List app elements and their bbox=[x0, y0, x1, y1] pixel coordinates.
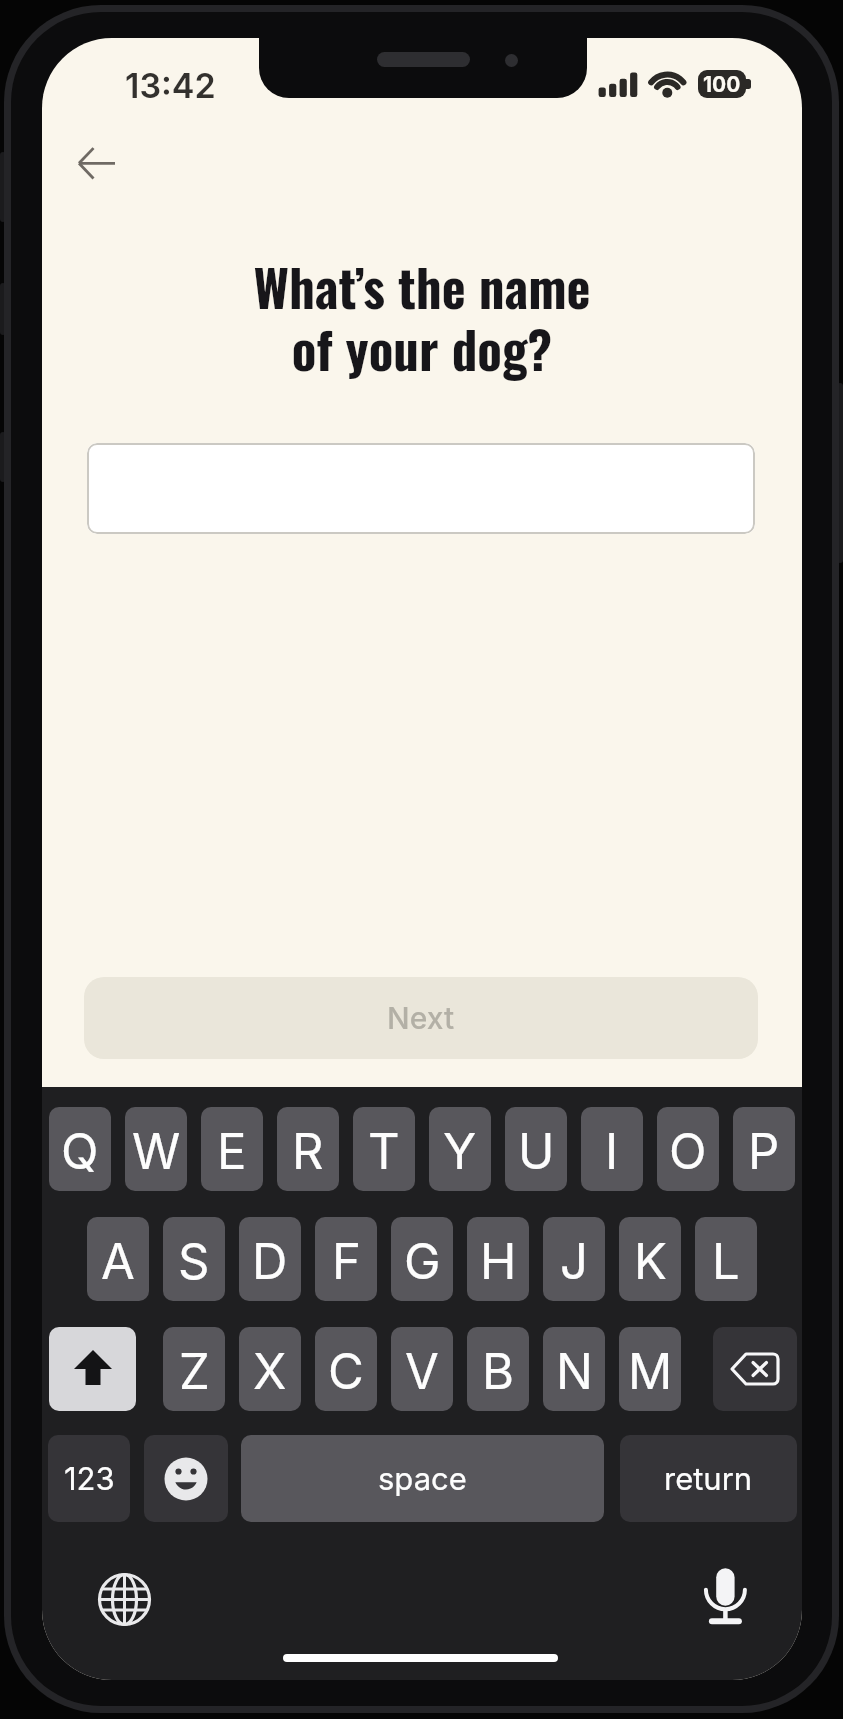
button[interactable] bbox=[713, 1327, 797, 1411]
staticText: F bbox=[332, 1232, 361, 1291]
staticText: E bbox=[217, 1122, 247, 1181]
button[interactable]: H bbox=[467, 1217, 529, 1301]
button[interactable]: return bbox=[620, 1435, 797, 1522]
button[interactable]: O bbox=[657, 1107, 719, 1191]
button[interactable]: V bbox=[391, 1327, 453, 1411]
button[interactable]: space bbox=[241, 1435, 604, 1522]
button[interactable]: B bbox=[467, 1327, 529, 1411]
staticText: D bbox=[252, 1232, 288, 1291]
staticText: W bbox=[132, 1122, 181, 1181]
button[interactable]: L bbox=[695, 1217, 757, 1301]
button[interactable]: U bbox=[505, 1107, 567, 1191]
button[interactable] bbox=[94, 1569, 155, 1630]
staticText: J bbox=[560, 1232, 588, 1291]
staticText: space bbox=[378, 1460, 467, 1498]
staticText: V bbox=[405, 1342, 439, 1401]
staticText: Y bbox=[443, 1122, 477, 1181]
staticText: H bbox=[480, 1232, 517, 1291]
button[interactable] bbox=[87, 443, 755, 534]
button[interactable]: A bbox=[87, 1217, 149, 1301]
staticText: What’s the name bbox=[42, 248, 802, 324]
button[interactable]: Z bbox=[163, 1327, 225, 1411]
staticText: N bbox=[556, 1342, 593, 1401]
button[interactable] bbox=[144, 1435, 228, 1522]
staticText: S bbox=[178, 1232, 210, 1291]
staticText: Z bbox=[179, 1342, 210, 1401]
button[interactable] bbox=[49, 1327, 136, 1411]
staticText: return bbox=[664, 1460, 753, 1498]
staticText: I bbox=[605, 1122, 619, 1181]
staticText: B bbox=[482, 1342, 515, 1401]
button[interactable]: C bbox=[315, 1327, 377, 1411]
staticText: U bbox=[518, 1122, 555, 1181]
button[interactable]: S bbox=[163, 1217, 225, 1301]
button[interactable]: Y bbox=[429, 1107, 491, 1191]
staticText: O bbox=[669, 1122, 707, 1181]
button[interactable]: E bbox=[201, 1107, 263, 1191]
staticText: 100 bbox=[703, 72, 741, 97]
staticText: of your dog? bbox=[42, 310, 802, 386]
button[interactable]: N bbox=[543, 1327, 605, 1411]
button[interactable]: F bbox=[315, 1217, 377, 1301]
staticText: K bbox=[634, 1232, 667, 1291]
staticText: X bbox=[253, 1342, 287, 1401]
button[interactable]: J bbox=[543, 1217, 605, 1301]
staticText: P bbox=[748, 1122, 780, 1181]
button[interactable]: W bbox=[125, 1107, 187, 1191]
button[interactable]: P bbox=[733, 1107, 795, 1191]
button[interactable] bbox=[696, 1565, 756, 1627]
staticText: M bbox=[628, 1342, 673, 1401]
button[interactable]: R bbox=[277, 1107, 339, 1191]
button[interactable]: K bbox=[619, 1217, 681, 1301]
staticText: 123 bbox=[64, 1460, 115, 1498]
button[interactable] bbox=[64, 133, 124, 193]
staticText: Next bbox=[387, 1000, 455, 1036]
button[interactable]: M bbox=[619, 1327, 681, 1411]
button[interactable]: 123 bbox=[48, 1435, 130, 1522]
staticText: 13:42 bbox=[125, 65, 216, 106]
button[interactable]: I bbox=[581, 1107, 643, 1191]
staticText: A bbox=[101, 1232, 135, 1291]
staticText: G bbox=[404, 1232, 441, 1291]
button[interactable]: T bbox=[353, 1107, 415, 1191]
button[interactable]: G bbox=[391, 1217, 453, 1301]
button[interactable]: Next bbox=[84, 977, 758, 1059]
staticText: T bbox=[368, 1122, 400, 1181]
button[interactable]: X bbox=[239, 1327, 301, 1411]
button[interactable]: D bbox=[239, 1217, 301, 1301]
staticText: C bbox=[328, 1342, 364, 1401]
button[interactable]: Q bbox=[49, 1107, 111, 1191]
staticText: R bbox=[292, 1122, 324, 1181]
staticText: Q bbox=[61, 1122, 99, 1181]
staticText: L bbox=[712, 1232, 740, 1291]
